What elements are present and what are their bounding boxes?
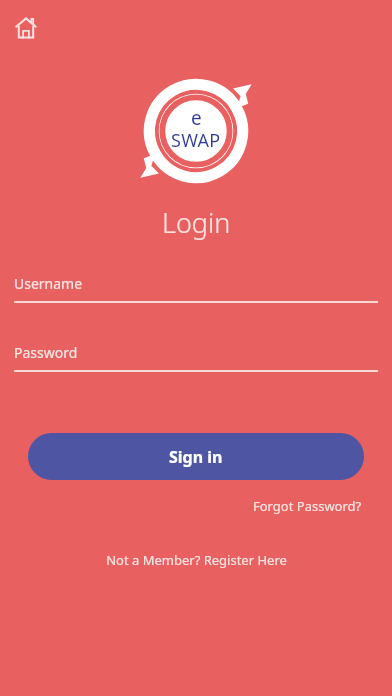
button[interactable]: Not a Member? Register Here [98, 547, 295, 573]
staticText: Login [162, 204, 231, 241]
button[interactable]: Home [9, 11, 43, 45]
staticText: Password [14, 343, 78, 362]
staticText: SWAP [171, 128, 221, 153]
button[interactable]: Password [14, 343, 378, 372]
button[interactable]: Forgot Password? [251, 493, 364, 519]
staticText: Username [14, 274, 83, 293]
button[interactable]: Sign in [28, 433, 364, 480]
staticText: Not a Member? Register Here [106, 551, 287, 569]
staticText: e [191, 105, 202, 131]
staticText: Sign in [169, 446, 223, 468]
button[interactable]: Username [14, 274, 378, 303]
staticText: Forgot Password? [253, 497, 362, 515]
